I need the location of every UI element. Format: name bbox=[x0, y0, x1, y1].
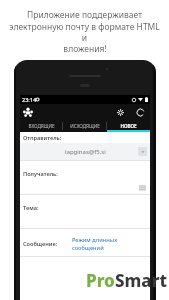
staticText: Сообщение: bbox=[23, 240, 58, 248]
button[interactable]: lapginas@f5.si bbox=[20, 143, 150, 160]
button[interactable] bbox=[20, 257, 150, 300]
staticText: lapginas@f5.si bbox=[65, 148, 106, 156]
other: Contacts bbox=[138, 183, 146, 191]
button[interactable]: НОВОЕ bbox=[107, 120, 150, 132]
staticText: Приложение поддерживает bbox=[27, 9, 142, 21]
staticText: электронную почту в формате HTML и bbox=[6, 21, 163, 43]
button[interactable]: ВХОДЯЩИЕ bbox=[20, 120, 62, 132]
staticText: НОВОЕ bbox=[120, 123, 137, 129]
staticText: вложения! bbox=[63, 43, 107, 55]
staticText: Режим длинных сообщений bbox=[72, 236, 147, 252]
staticText: 23:14 bbox=[22, 96, 37, 103]
staticText: ИСХОДЯЩИЕ bbox=[70, 123, 100, 129]
other: App logo bbox=[23, 107, 33, 117]
button[interactable]: Choose sender bbox=[138, 147, 147, 156]
button[interactable]: Refresh bbox=[135, 107, 146, 118]
button[interactable]: ИСХОДЯЩИЕ bbox=[63, 120, 106, 132]
staticText: Smart bbox=[115, 269, 168, 292]
staticText: Получатель: bbox=[23, 170, 58, 178]
button[interactable]: Settings bbox=[115, 107, 126, 118]
staticText: Отправитель: bbox=[23, 134, 62, 142]
staticText: ВХОДЯЩИЕ bbox=[28, 123, 55, 129]
staticText: Тема: bbox=[23, 204, 39, 212]
button[interactable]: Режим длинных сообщений bbox=[72, 236, 147, 252]
button[interactable]: Contacts bbox=[20, 179, 150, 194]
staticText: Pro bbox=[86, 269, 115, 292]
